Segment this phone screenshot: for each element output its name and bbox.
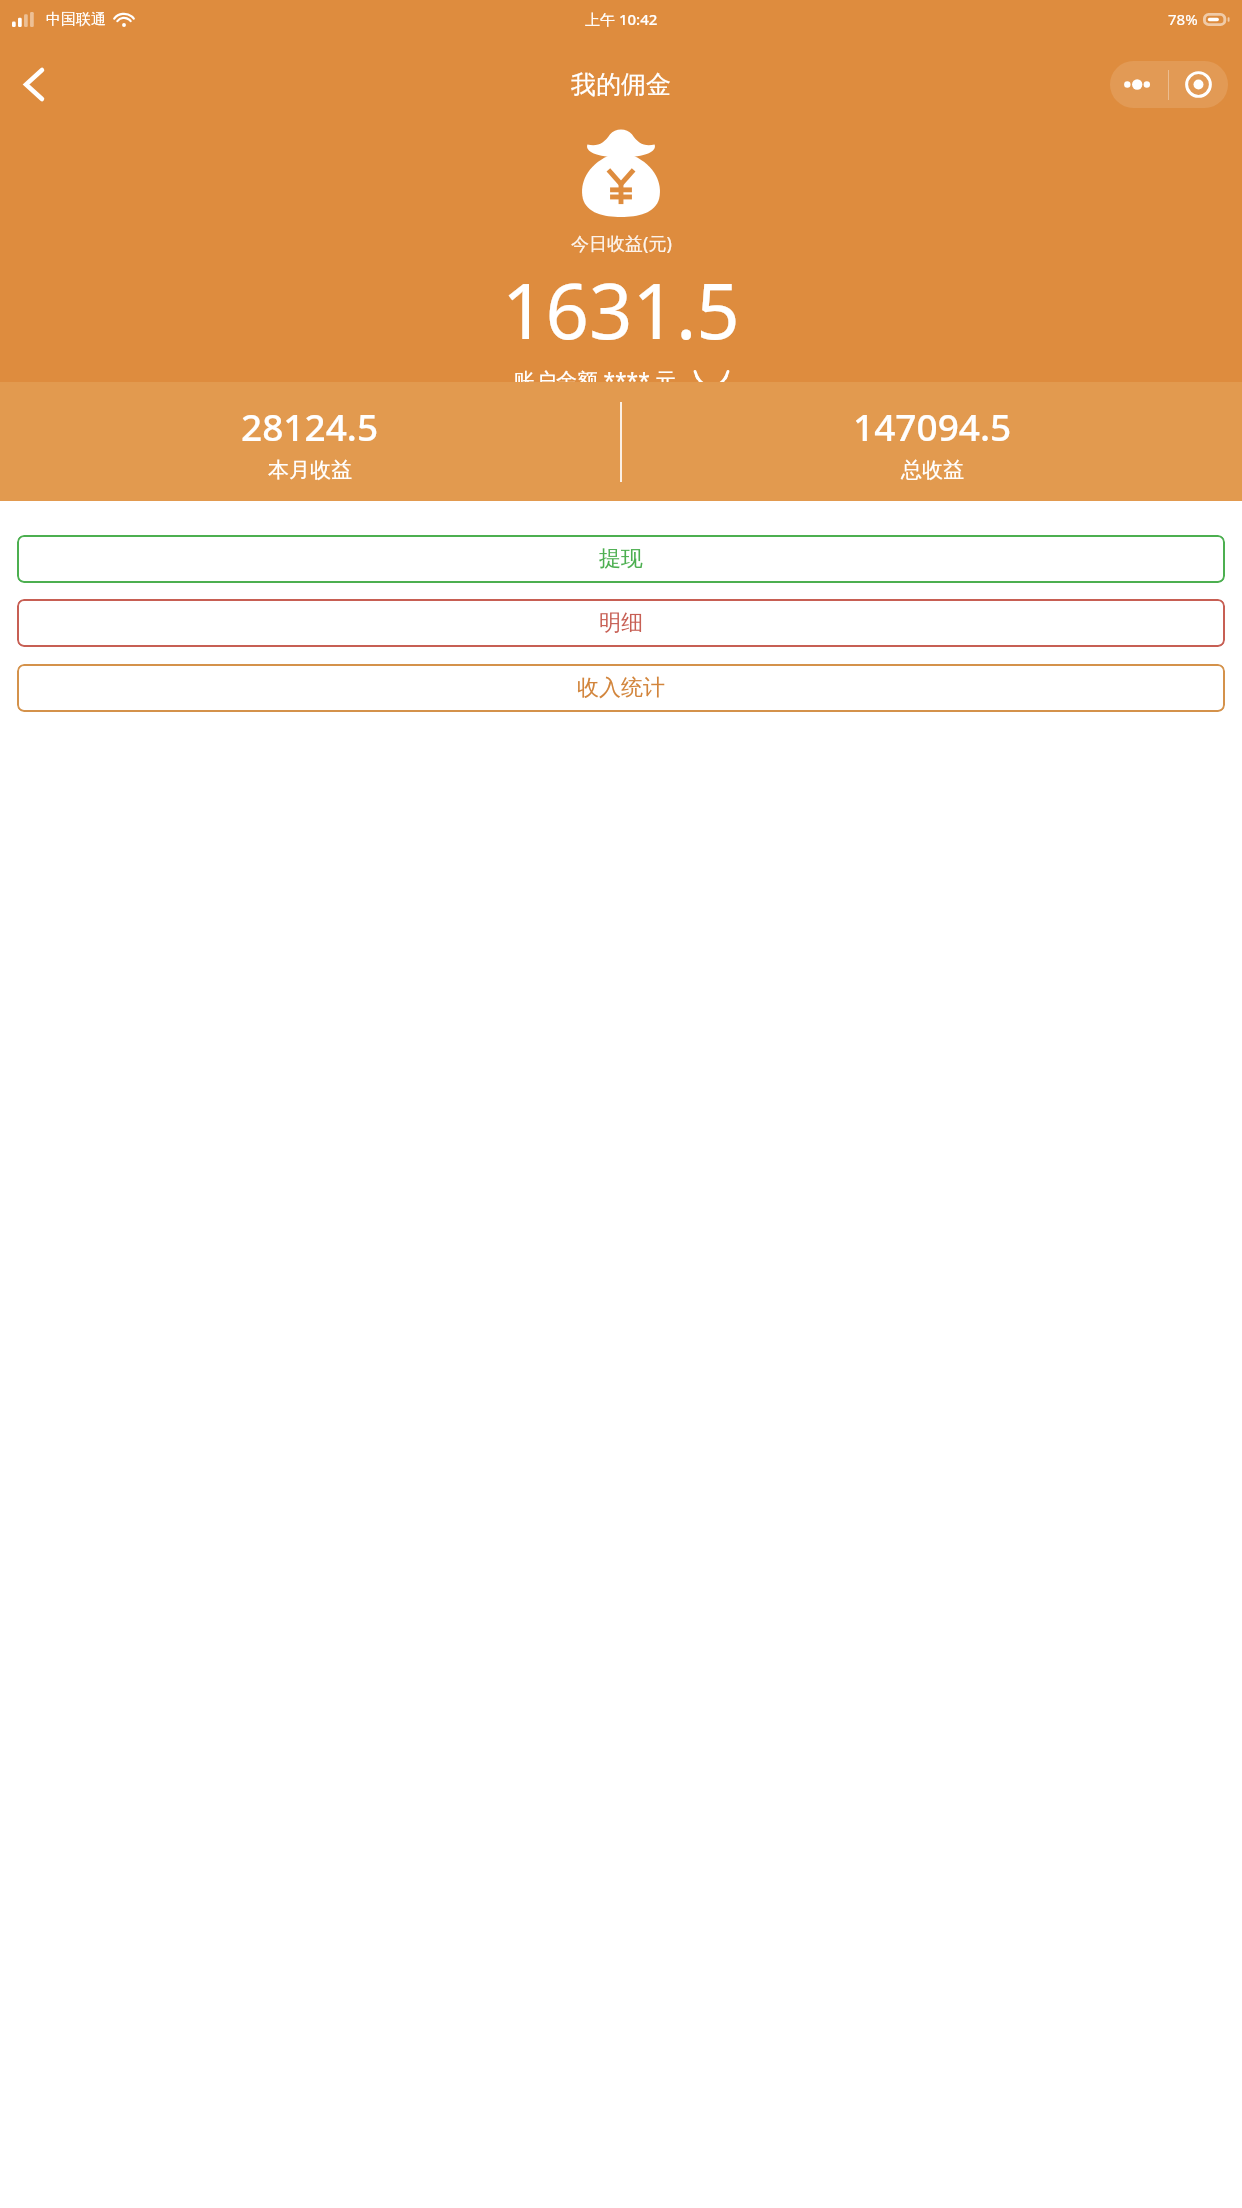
staticText: 147094.5 bbox=[853, 401, 1012, 451]
staticText: 提现 bbox=[599, 545, 643, 573]
staticText: 28124.5 bbox=[241, 401, 379, 451]
button[interactable]: More options bbox=[1110, 61, 1168, 108]
staticText: 明细 bbox=[599, 609, 643, 637]
staticText: 账户余额 **** 元 bbox=[514, 366, 677, 395]
staticText: 总收益 bbox=[901, 457, 964, 483]
button[interactable]: 账户余额 **** 元 bbox=[514, 366, 728, 395]
staticText: 本月收益 bbox=[268, 457, 352, 483]
staticText: 中国联通 bbox=[46, 10, 106, 29]
button[interactable]: 提现 bbox=[17, 535, 1225, 583]
button[interactable]: 147094.5 bbox=[622, 382, 1242, 501]
button[interactable]: 收入统计 bbox=[17, 664, 1225, 712]
staticText: 1631.5 bbox=[502, 258, 740, 362]
button[interactable]: Close mini program bbox=[1169, 61, 1228, 108]
staticText: 收入统计 bbox=[577, 674, 665, 702]
button[interactable]: 明细 bbox=[17, 599, 1225, 647]
staticText: 今日收益(元) bbox=[571, 231, 672, 256]
staticText: 上午 10:42 bbox=[585, 9, 658, 29]
staticText: 78% bbox=[1168, 9, 1198, 29]
staticText: 我的佣金 bbox=[571, 69, 671, 100]
button[interactable]: Back bbox=[10, 60, 58, 108]
button[interactable]: 28124.5 bbox=[0, 382, 620, 501]
